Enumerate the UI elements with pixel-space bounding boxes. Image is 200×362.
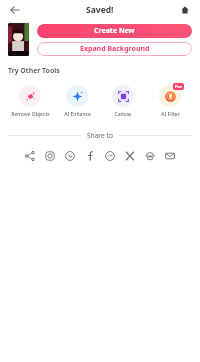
staticText: AI Enhance	[64, 111, 91, 118]
button[interactable]: Expand Background	[37, 42, 192, 56]
staticText: Saved!	[86, 4, 114, 16]
button[interactable]: Share	[22, 148, 38, 164]
staticText: Pro	[175, 84, 182, 89]
button[interactable]: Instagram	[42, 148, 58, 164]
button[interactable]: Email	[162, 148, 178, 164]
button[interactable]: X	[122, 148, 138, 164]
staticText: Try Other Tools	[8, 66, 60, 76]
button[interactable]: AI Enhance	[56, 82, 98, 119]
button[interactable]: Saved image preview	[8, 23, 29, 56]
staticText: Expand Background	[80, 44, 150, 54]
staticText: AI Filter	[161, 111, 180, 118]
button[interactable]: Home	[176, 1, 194, 19]
button[interactable]: Messenger	[102, 148, 118, 164]
button[interactable]: Pro	[149, 82, 191, 119]
button[interactable]: Remove Objects	[9, 82, 51, 119]
button[interactable]: Back	[6, 1, 24, 19]
button[interactable]: Reddit	[142, 148, 158, 164]
button[interactable]: Create New	[37, 24, 192, 38]
button[interactable]: WhatsApp	[62, 148, 78, 164]
button[interactable]: Facebook	[82, 148, 98, 164]
staticText: Create New	[94, 26, 135, 36]
staticText: Remove Objects	[11, 111, 50, 118]
button[interactable]: Canvas	[102, 82, 144, 119]
staticText: Canvas	[114, 111, 132, 118]
staticText: Share to	[87, 131, 113, 140]
